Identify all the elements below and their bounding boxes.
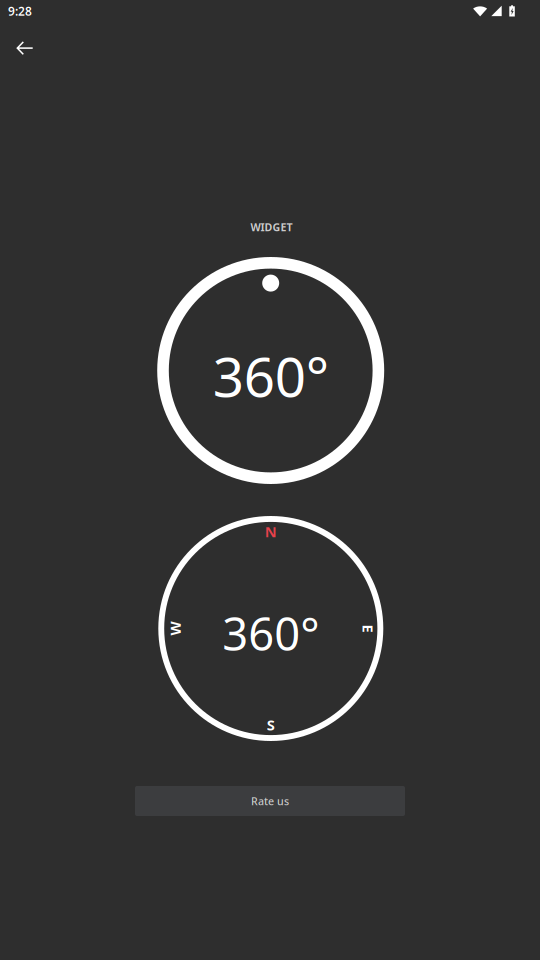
button[interactable]: Ring widget style, 360 degrees: [157, 257, 384, 484]
staticText: N: [265, 522, 277, 541]
staticText: S: [267, 715, 275, 734]
button[interactable]: Rate us: [135, 786, 405, 816]
staticText: E: [364, 619, 372, 638]
staticText: 360°: [222, 603, 319, 663]
staticText: W: [168, 619, 182, 638]
button[interactable]: Compass widget style, 360 degrees: [158, 516, 383, 741]
staticText: WIDGET: [250, 220, 292, 234]
staticText: Rate us: [251, 794, 289, 808]
button[interactable]: Back: [1, 24, 49, 72]
staticText: 360°: [213, 339, 329, 412]
staticText: 9:28: [8, 3, 32, 19]
